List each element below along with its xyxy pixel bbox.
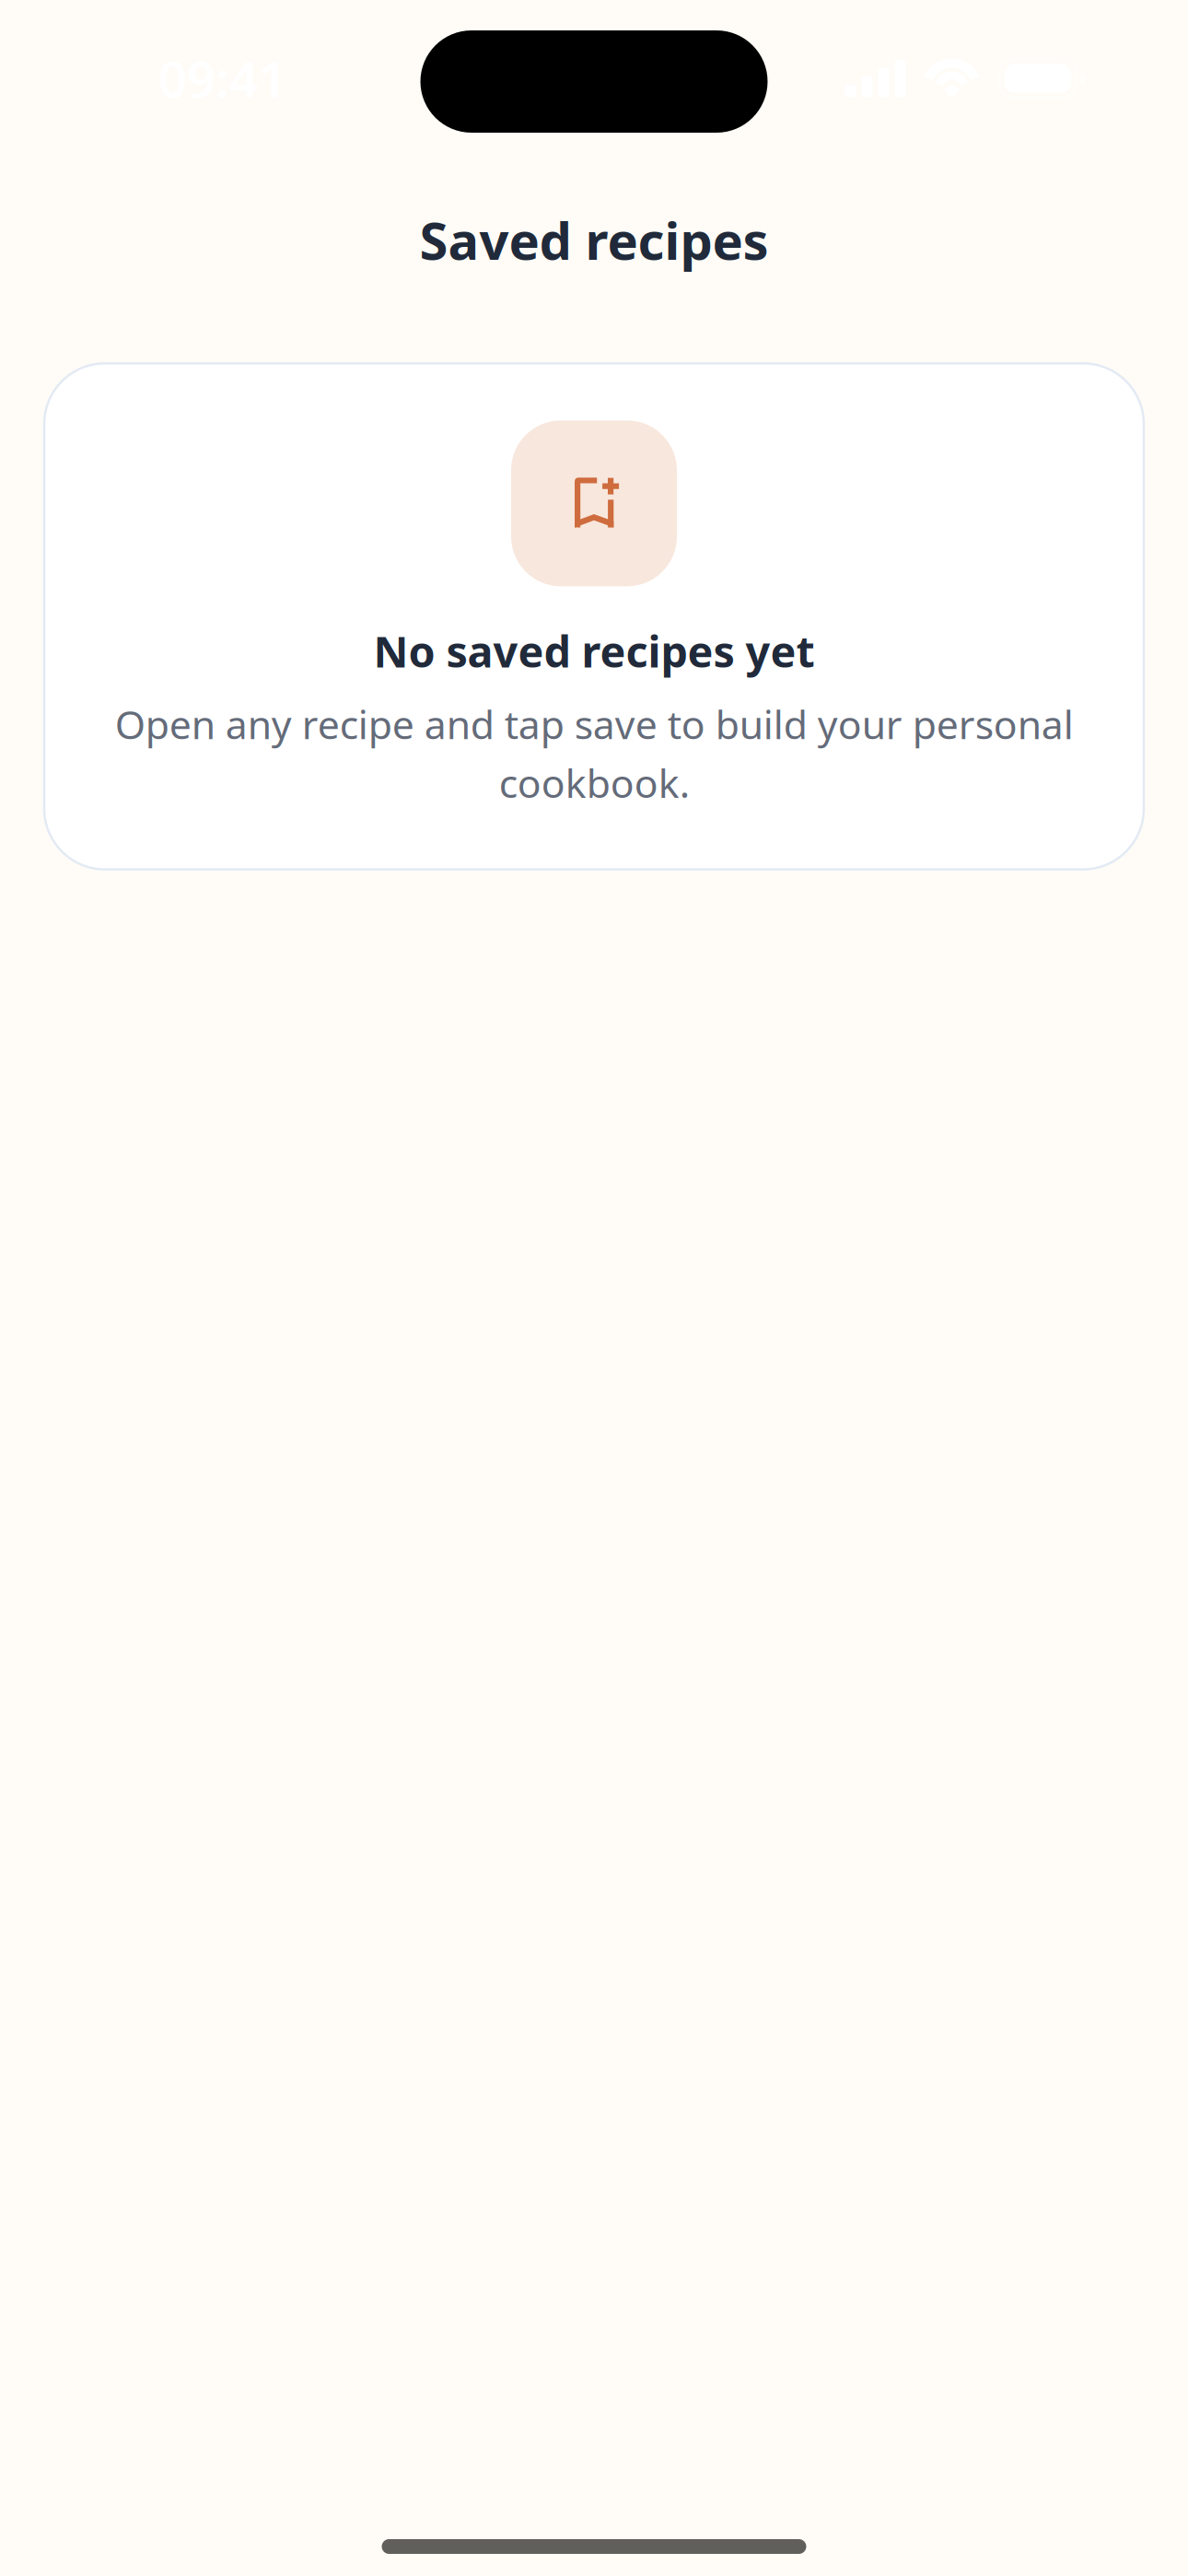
staticText: Open any recipe and tap save to build yo…	[115, 698, 1073, 809]
staticText: Saved recipes	[419, 205, 769, 274]
staticText: No saved recipes yet	[373, 622, 815, 679]
staticText: 09:41	[158, 45, 286, 112]
